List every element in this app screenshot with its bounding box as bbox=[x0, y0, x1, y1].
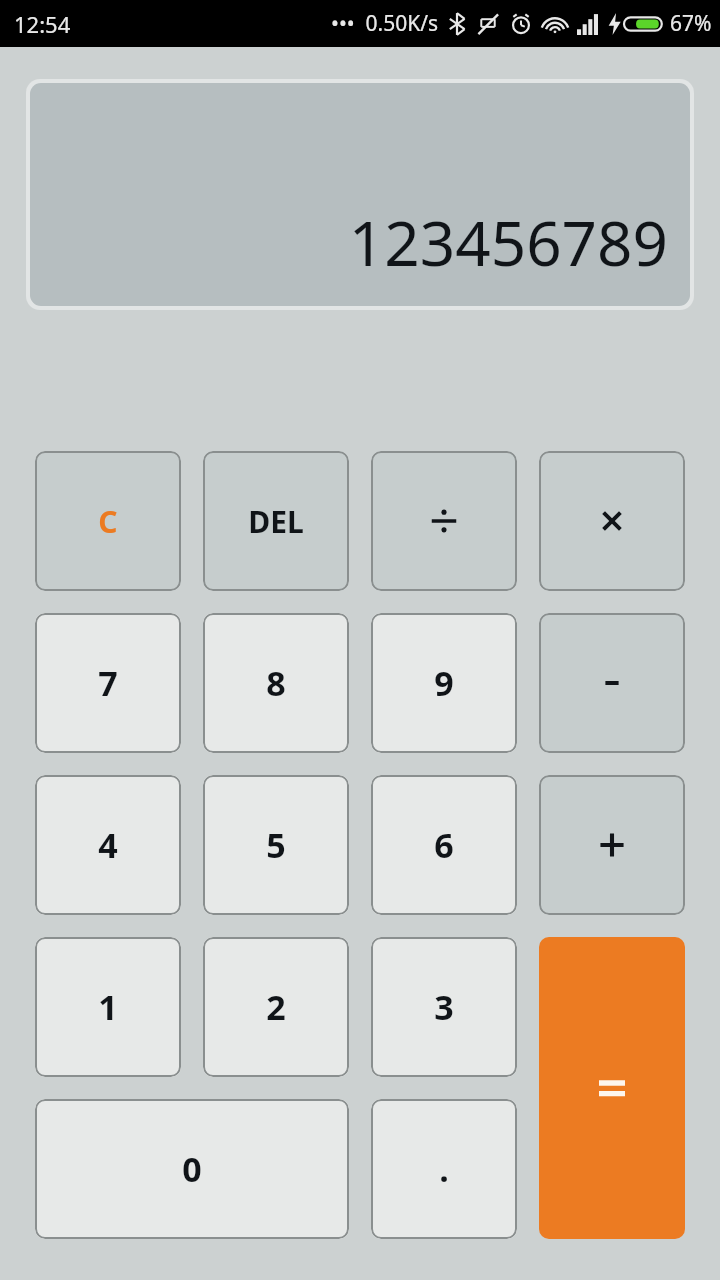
button[interactable]: . bbox=[371, 1099, 517, 1239]
button[interactable]: Multiply bbox=[539, 451, 685, 591]
button[interactable]: 8 bbox=[203, 613, 349, 753]
button[interactable]: 3 bbox=[371, 937, 517, 1077]
staticText: . bbox=[439, 1146, 449, 1192]
button[interactable]: C bbox=[35, 451, 181, 591]
button[interactable]: 123456789 bbox=[30, 83, 690, 306]
staticText: DEL bbox=[248, 501, 304, 542]
staticText: 12:54 bbox=[14, 9, 71, 39]
button[interactable]: Plus bbox=[539, 775, 685, 915]
staticText: 1 bbox=[98, 984, 118, 1030]
staticText: 67% bbox=[670, 9, 712, 38]
button[interactable]: 4 bbox=[35, 775, 181, 915]
button[interactable]: Minus bbox=[539, 613, 685, 753]
button[interactable]: 9 bbox=[371, 613, 517, 753]
staticText: 0 bbox=[182, 1146, 202, 1192]
button[interactable]: 7 bbox=[35, 613, 181, 753]
staticText: 7 bbox=[98, 660, 118, 706]
staticText: ••• 0.50K/s bbox=[331, 9, 439, 38]
staticText: 4 bbox=[98, 822, 118, 868]
button[interactable]: DEL bbox=[203, 451, 349, 591]
button[interactable]: 2 bbox=[203, 937, 349, 1077]
button[interactable]: 5 bbox=[203, 775, 349, 915]
button[interactable]: Equals bbox=[539, 937, 685, 1239]
button[interactable]: Divide bbox=[371, 451, 517, 591]
button[interactable]: 6 bbox=[371, 775, 517, 915]
staticText: 123456789 bbox=[348, 200, 668, 284]
staticText: 3 bbox=[434, 984, 454, 1030]
button[interactable]: 0 bbox=[35, 1099, 349, 1239]
button[interactable]: 1 bbox=[35, 937, 181, 1077]
staticText: 5 bbox=[266, 822, 286, 868]
staticText: 9 bbox=[434, 660, 454, 706]
staticText: C bbox=[98, 501, 118, 542]
staticText: 8 bbox=[266, 660, 286, 706]
staticText: 6 bbox=[434, 822, 454, 868]
staticText: 2 bbox=[266, 984, 286, 1030]
